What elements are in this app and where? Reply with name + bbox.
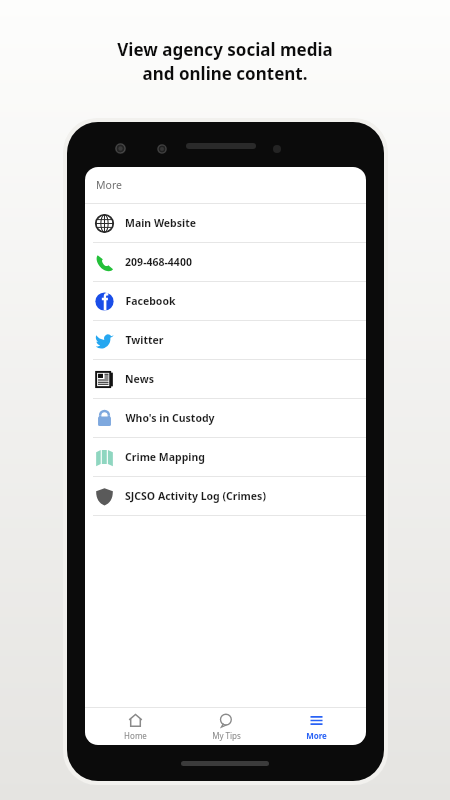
button[interactable]: Twitter	[85, 321, 366, 359]
staticText: My Tips	[212, 730, 241, 741]
button[interactable]: Main Website	[85, 204, 366, 242]
staticText: SJCSO Activity Log (Crimes)	[125, 489, 266, 503]
staticText: More	[306, 730, 327, 741]
button[interactable]: More	[276, 713, 356, 741]
staticText: and online content.	[142, 62, 308, 85]
staticText: Twitter	[125, 333, 164, 347]
staticText: Home	[124, 730, 147, 741]
staticText: Main Website	[125, 216, 196, 230]
button[interactable]: News	[85, 360, 366, 398]
staticText: Who's in Custody	[125, 411, 215, 425]
staticText: Facebook	[125, 294, 176, 308]
button[interactable]: Crime Mapping	[85, 438, 366, 476]
staticText: More	[96, 178, 122, 192]
button[interactable]: 209-468-4400	[85, 243, 366, 281]
staticText: Crime Mapping	[125, 450, 205, 464]
button[interactable]: My Tips	[186, 713, 266, 741]
button[interactable]: Who's in Custody	[85, 399, 366, 437]
staticText: View agency social media	[117, 38, 333, 61]
staticText: 209-468-4400	[125, 255, 192, 269]
button[interactable]: Facebook	[85, 282, 366, 320]
staticText: News	[125, 372, 154, 386]
button[interactable]: SJCSO Activity Log (Crimes)	[85, 477, 366, 515]
button[interactable]: Home	[95, 713, 175, 741]
